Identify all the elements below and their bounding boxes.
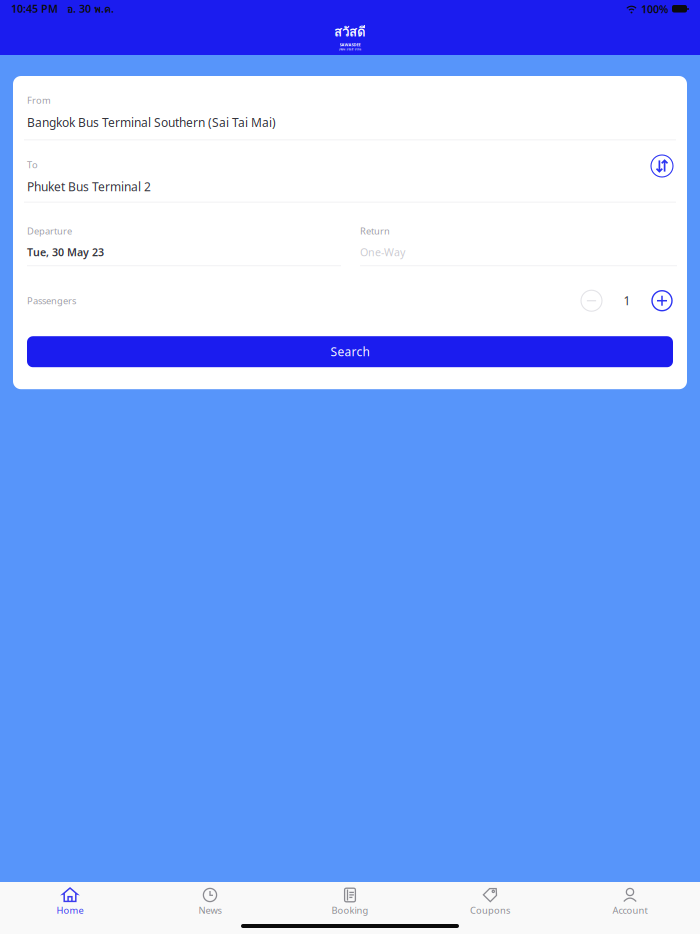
button[interactable]: Booking [280, 882, 420, 922]
staticText: SAWASDEE [339, 42, 360, 47]
button[interactable]: Increase passengers [652, 291, 672, 311]
staticText: Search [330, 344, 369, 360]
staticText: Bangkok Bus Terminal Southern (Sai Tai M… [27, 114, 276, 130]
button[interactable]: News [140, 882, 280, 922]
staticText: Account [612, 904, 647, 916]
staticText: Coupons [470, 904, 510, 916]
staticText: To [27, 158, 38, 171]
button[interactable]: Coupons [420, 882, 560, 922]
staticText: Booking [331, 904, 368, 916]
staticText: 1 [623, 293, 630, 309]
staticText: Home [56, 904, 83, 916]
button[interactable]: Search [27, 336, 673, 367]
button[interactable]: Account [560, 882, 700, 922]
staticText: News [198, 904, 221, 916]
staticText: 100% [641, 2, 668, 16]
staticText: From [27, 94, 51, 106]
staticText: Passengers [27, 294, 76, 307]
staticText: Return [360, 225, 390, 237]
button[interactable]: Decrease passengers [581, 290, 602, 311]
staticText: บริษัท สวัสดี จำกัด [338, 47, 361, 51]
staticText: Tue, 30 May 23 [27, 245, 104, 259]
staticText: Departure [27, 225, 72, 237]
staticText: สวัสดี [334, 21, 366, 42]
staticText: 10:45 PM อ. 30 พ.ค. [11, 1, 114, 17]
button[interactable]: Home [0, 882, 140, 922]
staticText: One-Way [360, 245, 405, 259]
staticText: Phuket Bus Terminal 2 [27, 179, 151, 195]
button[interactable]: Swap origin and destination [651, 155, 673, 177]
